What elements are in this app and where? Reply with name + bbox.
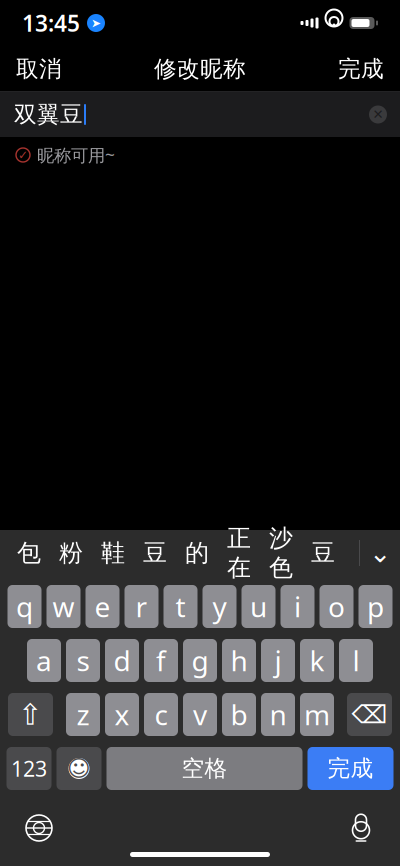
- button[interactable]: b: [222, 693, 256, 736]
- staticText: 123: [11, 754, 47, 783]
- staticText: 完成: [327, 755, 373, 782]
- button[interactable]: Switch keyboard: [16, 805, 62, 851]
- button[interactable]: p: [358, 585, 392, 628]
- staticText: s: [76, 642, 89, 679]
- button[interactable]: u: [241, 585, 275, 628]
- button[interactable]: o: [319, 585, 353, 628]
- button[interactable]: 沙色: [260, 531, 302, 575]
- button[interactable]: n: [261, 693, 295, 736]
- staticText: ✕: [372, 107, 383, 122]
- staticText: k: [309, 642, 324, 679]
- staticText: q: [16, 588, 33, 625]
- staticText: 完成: [338, 55, 384, 83]
- button[interactable]: a: [27, 639, 61, 682]
- button[interactable]: Hide candidates: [360, 531, 400, 575]
- button[interactable]: k: [300, 639, 334, 682]
- staticText: ⇧: [18, 698, 43, 731]
- staticText: ⌫: [351, 700, 387, 729]
- staticText: 包: [17, 538, 41, 568]
- button[interactable]: 完成: [307, 747, 393, 790]
- staticText: x: [114, 696, 129, 733]
- staticText: 修改昵称: [154, 55, 246, 83]
- staticText: ⌄: [369, 538, 391, 568]
- staticText: b: [230, 696, 247, 733]
- staticText: p: [367, 588, 384, 625]
- button[interactable]: 豆: [134, 531, 176, 575]
- button[interactable]: q: [7, 585, 41, 628]
- button[interactable]: l: [339, 639, 373, 682]
- button[interactable]: 123: [6, 747, 51, 790]
- button[interactable]: 豆: [302, 531, 344, 575]
- button[interactable]: g: [183, 639, 217, 682]
- button[interactable]: r: [124, 585, 158, 628]
- button[interactable]: t: [163, 585, 197, 628]
- staticText: u: [250, 588, 267, 625]
- button[interactable]: Delete: [347, 693, 392, 736]
- staticText: 粉: [59, 538, 83, 568]
- button[interactable]: s: [66, 639, 100, 682]
- button[interactable]: z: [66, 693, 100, 736]
- staticText: ➤: [91, 16, 101, 30]
- staticText: ✓: [18, 148, 28, 162]
- staticText: 双翼豆: [14, 101, 83, 128]
- staticText: 豆: [143, 538, 167, 568]
- staticText: o: [328, 588, 345, 625]
- staticText: d: [113, 642, 130, 679]
- staticText: g: [191, 642, 208, 679]
- staticText: 鞋: [101, 538, 125, 568]
- button[interactable]: 空格: [106, 747, 302, 790]
- staticText: ☺: [67, 756, 91, 781]
- button[interactable]: Clear text: [360, 94, 396, 134]
- button[interactable]: 鞋: [92, 531, 134, 575]
- button[interactable]: Emoji: [56, 747, 101, 790]
- staticText: v: [193, 696, 207, 733]
- button[interactable]: Shift: [8, 693, 53, 736]
- staticText: 豆: [311, 538, 335, 568]
- button[interactable]: v: [183, 693, 217, 736]
- staticText: l: [352, 642, 359, 679]
- staticText: z: [76, 696, 89, 733]
- staticText: a: [36, 642, 52, 679]
- button[interactable]: j: [261, 639, 295, 682]
- staticText: h: [230, 642, 247, 679]
- button[interactable]: Dictation: [338, 805, 384, 851]
- staticText: f: [156, 642, 166, 679]
- button[interactable]: c: [144, 693, 178, 736]
- button[interactable]: i: [280, 585, 314, 628]
- button[interactable]: 粉: [50, 531, 92, 575]
- button[interactable]: e: [85, 585, 119, 628]
- staticText: 13:45: [22, 8, 80, 38]
- staticText: y: [212, 588, 226, 625]
- staticText: 取消: [16, 55, 62, 83]
- staticText: 正在: [227, 523, 251, 582]
- button[interactable]: d: [105, 639, 139, 682]
- staticText: 的: [185, 538, 209, 568]
- staticText: m: [304, 696, 330, 733]
- button[interactable]: m: [300, 693, 334, 736]
- staticText: n: [269, 696, 286, 733]
- button[interactable]: 正在: [218, 531, 260, 575]
- staticText: 沙色: [269, 523, 293, 582]
- staticText: j: [274, 642, 281, 679]
- button[interactable]: h: [222, 639, 256, 682]
- button[interactable]: w: [46, 585, 80, 628]
- staticText: r: [135, 588, 147, 625]
- button[interactable]: f: [144, 639, 178, 682]
- staticText: 空格: [181, 755, 227, 782]
- staticText: e: [94, 588, 110, 625]
- button[interactable]: 的: [176, 531, 218, 575]
- button[interactable]: 完成: [322, 44, 400, 94]
- staticText: w: [52, 588, 74, 625]
- button[interactable]: x: [105, 693, 139, 736]
- staticText: c: [154, 696, 167, 733]
- button[interactable]: 取消: [0, 44, 78, 94]
- staticText: i: [294, 588, 301, 625]
- button[interactable]: y: [202, 585, 236, 628]
- staticText: t: [175, 588, 185, 625]
- staticText: 昵称可用~: [37, 143, 115, 166]
- button[interactable]: 包: [8, 531, 50, 575]
